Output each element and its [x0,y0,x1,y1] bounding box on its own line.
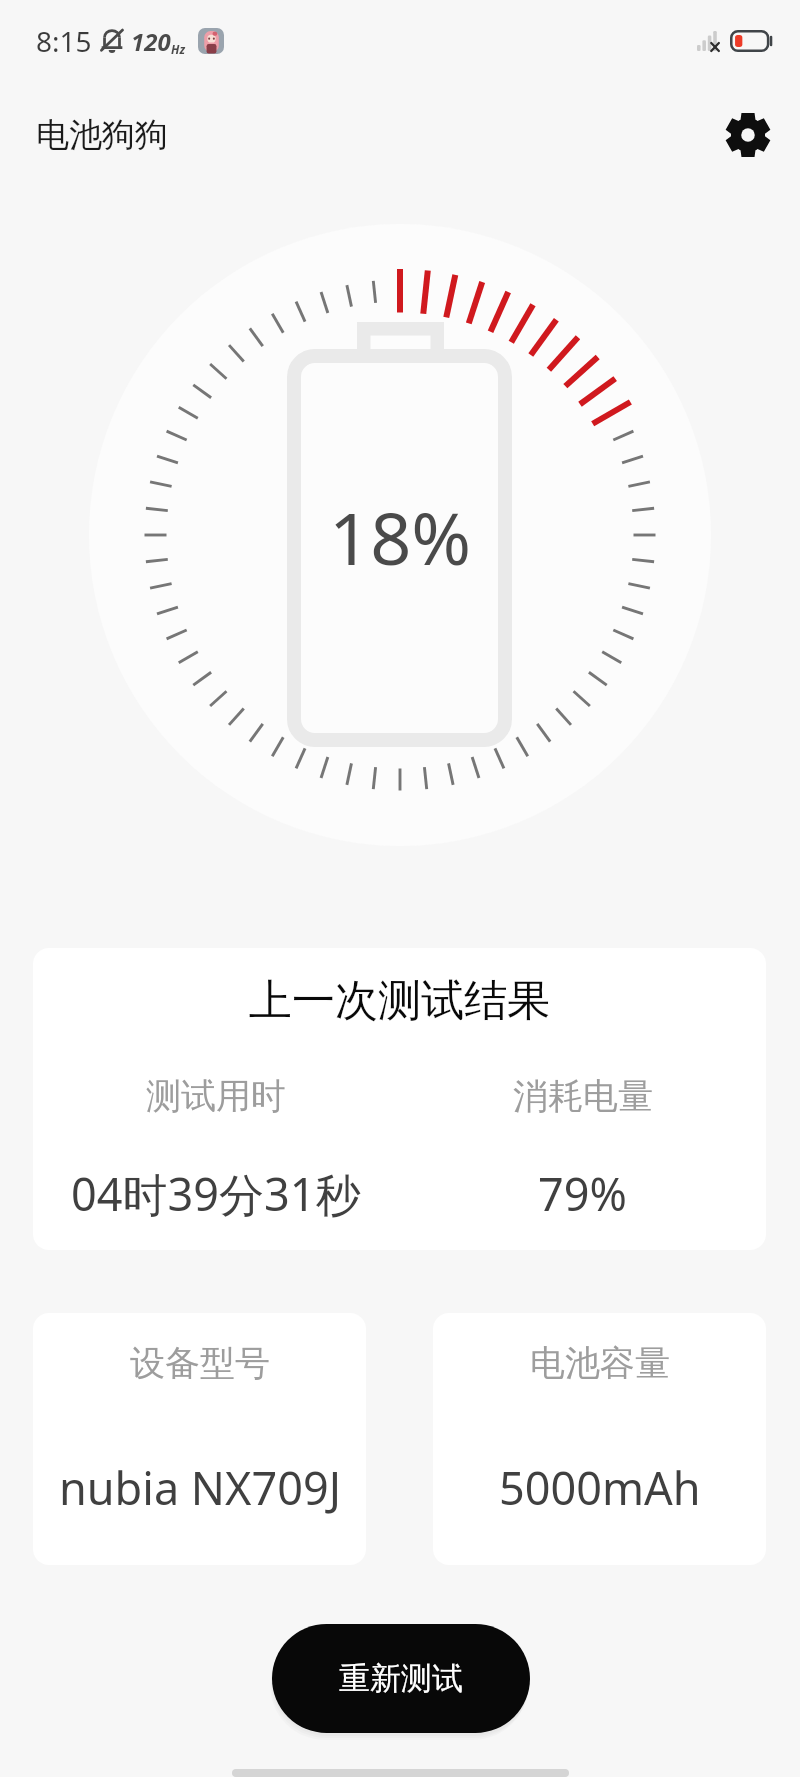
staticText: 04时39分31秒 [71,1163,361,1224]
staticText: 5000mAh [499,1457,701,1518]
button[interactable]: 上一次测试结果 [33,948,766,1250]
staticText: 电池狗狗 [36,114,168,156]
staticText: 18% [329,488,472,586]
staticText: 8:15 [36,22,92,60]
staticText: 消耗电量 [513,1074,653,1118]
staticText: 设备型号 [130,1341,270,1385]
button[interactable]: 设备型号 [33,1313,366,1565]
button[interactable]: Settings [718,105,778,165]
staticText: 重新测试 [339,1659,463,1698]
staticText: 上一次测试结果 [249,974,550,1028]
button[interactable]: 电池容量 [433,1313,766,1565]
staticText: 电池容量 [530,1341,670,1385]
staticText: 120 [131,25,171,58]
staticText: Hz [171,41,186,57]
staticText: 测试用时 [146,1074,286,1118]
button[interactable]: 重新测试 [272,1624,530,1733]
staticText: 79% [538,1163,627,1224]
staticText: nubia NX709J [59,1457,341,1518]
